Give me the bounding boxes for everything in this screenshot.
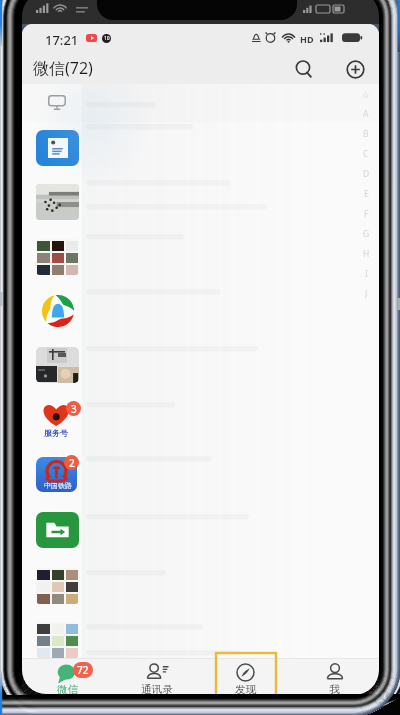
button[interactable]: 我 xyxy=(290,658,379,701)
staticText: B xyxy=(363,128,369,140)
button[interactable] xyxy=(22,175,379,229)
staticText: HD xyxy=(300,33,314,45)
button[interactable]: 服务号 xyxy=(22,392,379,446)
button[interactable] xyxy=(22,613,379,667)
staticText: A xyxy=(363,108,369,120)
button[interactable] xyxy=(22,121,379,175)
staticText: F xyxy=(364,208,369,220)
staticText: 中国铁路 xyxy=(44,481,72,490)
staticText: I xyxy=(365,268,368,280)
button[interactable] xyxy=(22,503,379,557)
staticText: 微信 xyxy=(57,683,78,696)
staticText: D xyxy=(363,168,370,180)
staticText: 我 xyxy=(329,683,340,696)
staticText: 微信(72) xyxy=(33,57,93,79)
button[interactable]: 通讯录 xyxy=(112,658,201,701)
staticText: E xyxy=(364,188,369,200)
staticText: 2 xyxy=(69,456,75,470)
button[interactable]: 中国铁路 xyxy=(22,447,379,501)
staticText: 72 xyxy=(77,663,89,677)
button[interactable] xyxy=(22,84,379,122)
button[interactable]: Search xyxy=(287,52,321,86)
button[interactable] xyxy=(22,230,379,284)
button[interactable]: 72 xyxy=(22,658,112,701)
staticText: G xyxy=(363,228,370,240)
button[interactable] xyxy=(22,338,379,392)
staticText: 通讯录 xyxy=(141,683,173,696)
button[interactable] xyxy=(22,284,379,338)
staticText: ☆ xyxy=(362,90,370,100)
staticText: H xyxy=(363,248,370,260)
staticText: 服务号 xyxy=(44,428,68,438)
staticText: 发现 xyxy=(235,683,256,696)
staticText: 17:21 xyxy=(45,31,79,49)
button[interactable] xyxy=(22,559,379,613)
button[interactable]: Add xyxy=(338,52,372,86)
staticText: 10 xyxy=(104,35,110,42)
staticText: C xyxy=(363,148,369,160)
staticText: 3 xyxy=(71,402,77,416)
staticText: J xyxy=(365,288,368,300)
button[interactable]: 发现 xyxy=(201,658,290,701)
